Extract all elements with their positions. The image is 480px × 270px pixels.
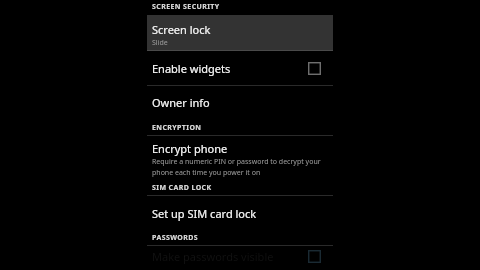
other: Enable widgets checkbox [308, 62, 321, 75]
button[interactable]: Screen lock [147, 15, 333, 51]
staticText: SCREEN SECURITY [152, 2, 220, 12]
staticText: Enable widgets [152, 61, 231, 76]
staticText: Make passwords visible [152, 249, 274, 264]
staticText: Set up SIM card lock [152, 206, 257, 221]
staticText: ENCRYPTION [152, 123, 202, 133]
staticText: Screen lock [152, 22, 211, 37]
button[interactable]: Encrypt phone [147, 136, 333, 181]
button[interactable]: Make passwords visible [147, 246, 333, 266]
button[interactable]: Enable widgets [147, 51, 333, 85]
staticText: Require a numeric PIN or password to dec… [152, 157, 330, 177]
staticText: Owner info [152, 95, 210, 110]
staticText: Slide [152, 38, 168, 48]
staticText: PASSWORDS [152, 233, 198, 243]
staticText: SIM CARD LOCK [152, 183, 212, 193]
staticText: Encrypt phone [152, 141, 228, 156]
button[interactable]: Set up SIM card lock [147, 196, 333, 230]
button[interactable]: Owner info [147, 86, 333, 119]
